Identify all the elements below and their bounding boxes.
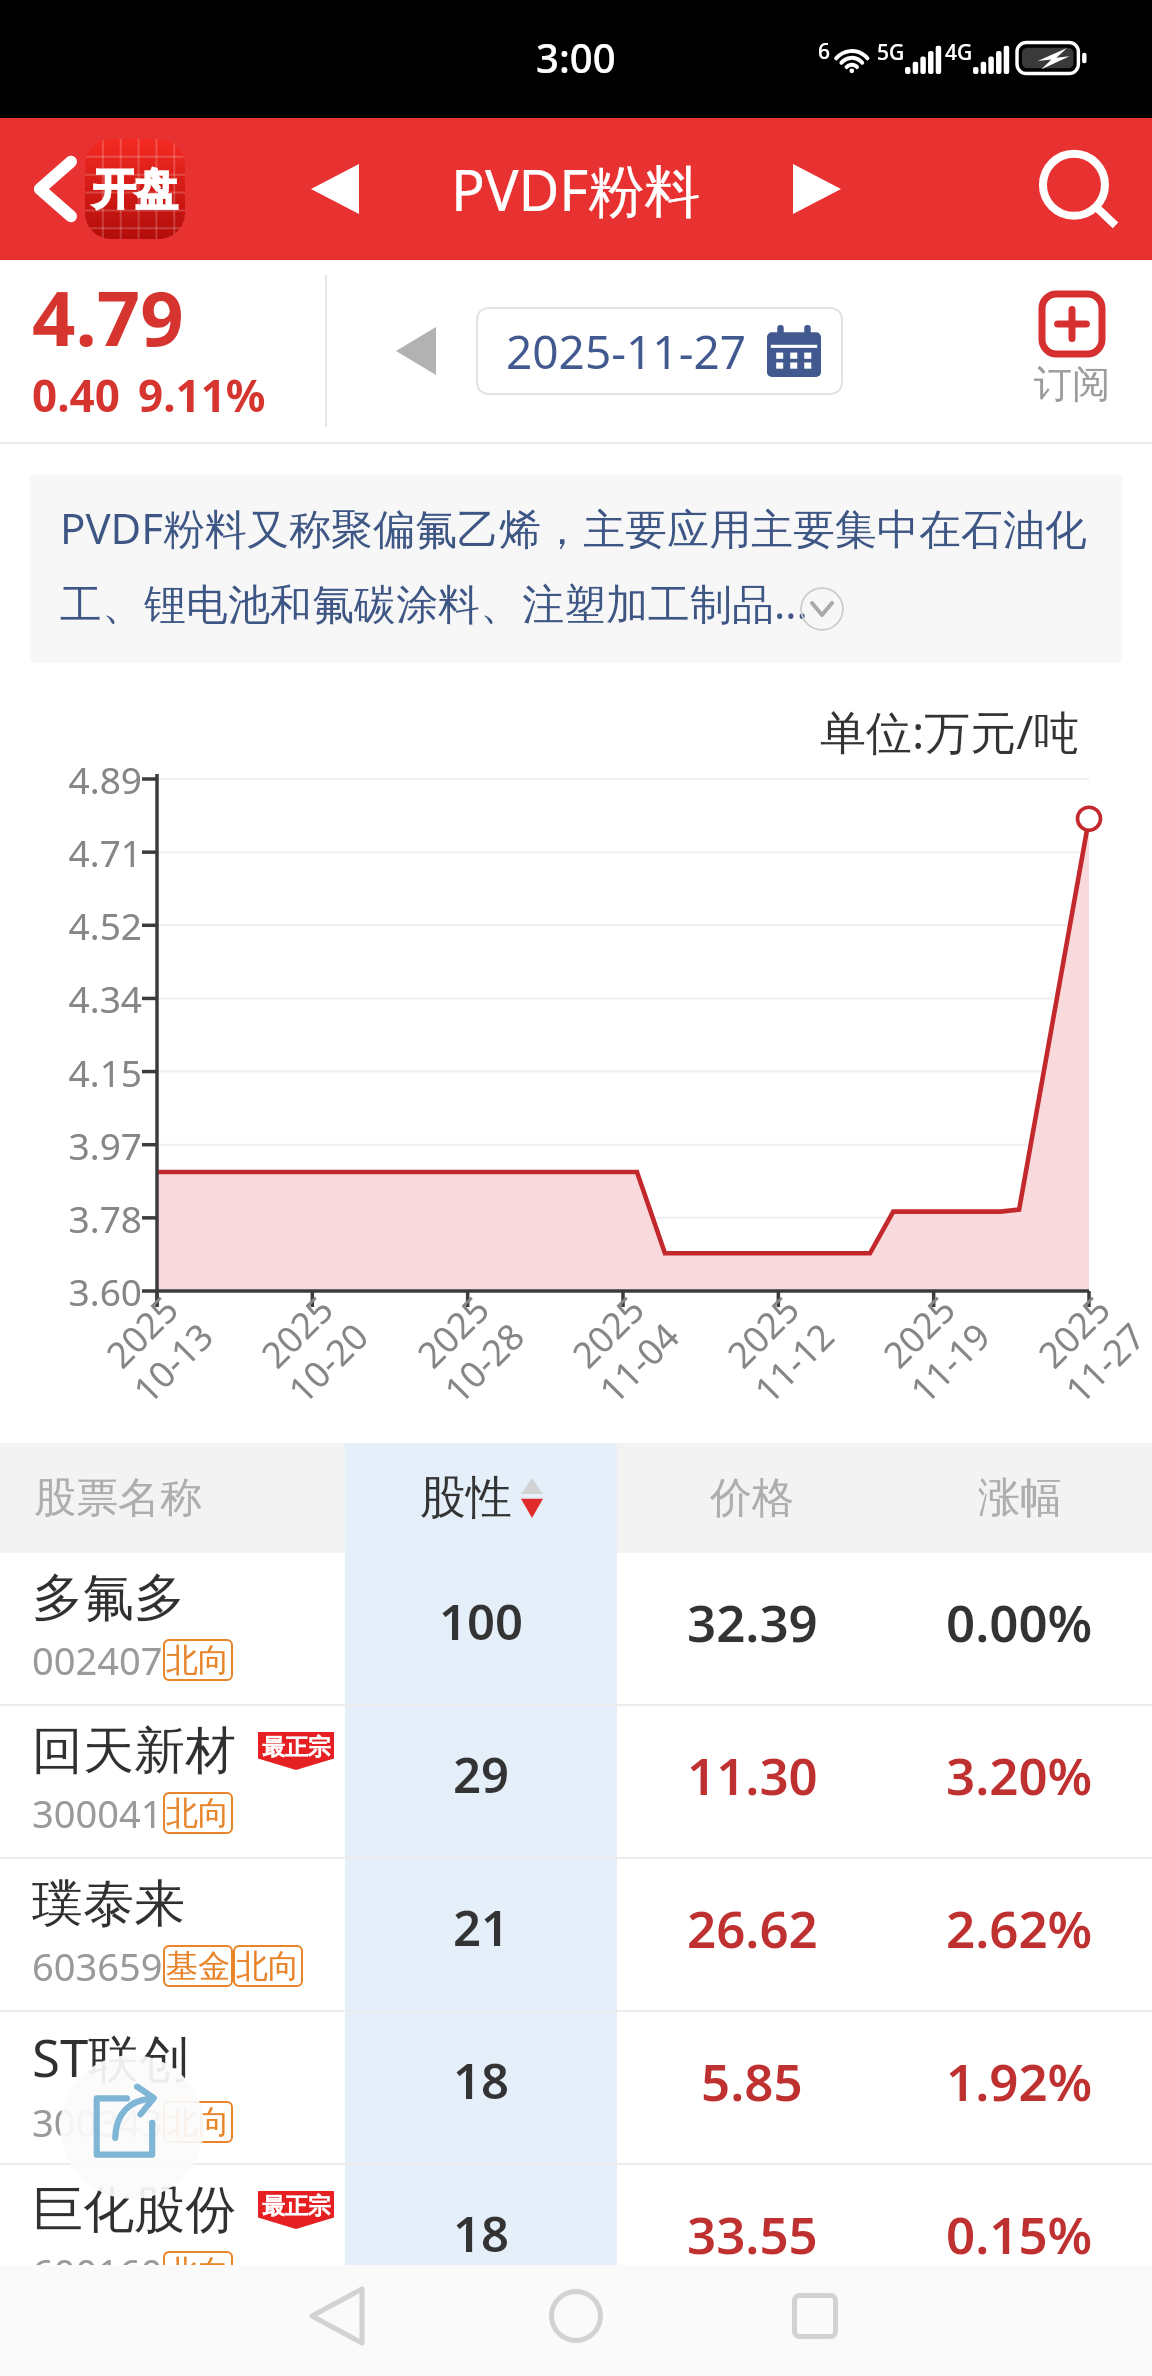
staticText: 3.20% xyxy=(946,1740,1093,1809)
staticText: 4.52 xyxy=(20,900,142,950)
button[interactable]: Subscribe xyxy=(1034,294,1110,408)
staticText: 巨化股份 xyxy=(32,2178,236,2242)
staticText: 订阅 xyxy=(1034,360,1110,408)
button[interactable]: 多氟多 xyxy=(0,1553,1152,1704)
staticText: 26.62 xyxy=(687,1893,818,1962)
staticText: 股票名称 xyxy=(34,1472,202,1525)
staticText: 涨幅 xyxy=(978,1472,1062,1525)
staticText: 100 xyxy=(439,1588,524,1655)
staticText: 6 xyxy=(818,37,831,66)
staticText: 北向 xyxy=(166,1793,230,1833)
staticText: 002407 xyxy=(32,1634,163,1686)
staticText: 2025 10-20 xyxy=(246,1281,378,1413)
staticText: 4.89 xyxy=(20,754,142,804)
staticText: 5G xyxy=(877,38,905,67)
staticText: 璞泰来 xyxy=(32,1872,185,1936)
button[interactable]: Next xyxy=(773,145,861,233)
staticText: 北向 xyxy=(236,1946,300,1986)
staticText: 最正宗 xyxy=(262,1733,331,1762)
staticText: 2025-11-27 xyxy=(506,320,747,383)
staticText: 18 xyxy=(453,2047,510,2114)
staticText: 4G xyxy=(945,38,973,67)
staticText: 开盘 xyxy=(93,163,177,217)
staticText: 4.15 xyxy=(20,1047,142,1097)
staticText: 1.92% xyxy=(946,2046,1093,2115)
button[interactable]: 回天新材 xyxy=(0,1706,1152,1857)
button[interactable]: 巨化股份 xyxy=(0,2165,1152,2316)
staticText: 3.97 xyxy=(20,1120,142,1170)
staticText: PVDF粉料 xyxy=(451,151,701,227)
staticText: 4.71 xyxy=(20,827,142,877)
staticText: 11.30 xyxy=(687,1740,818,1809)
staticText: 603659 xyxy=(32,1940,163,1992)
staticText: 3.78 xyxy=(20,1193,142,1243)
staticText: 29 xyxy=(453,1741,510,1808)
button[interactable]: Back xyxy=(10,144,100,234)
staticText: 21 xyxy=(453,1894,510,1961)
staticText: 4.79 xyxy=(32,265,184,369)
staticText: 33.55 xyxy=(687,2199,818,2268)
button[interactable]: Previous xyxy=(291,145,379,233)
staticText: 18 xyxy=(453,2200,510,2267)
staticText: 300041 xyxy=(32,1787,163,1839)
button[interactable]: Share xyxy=(60,2055,204,2199)
staticText: ST联创 xyxy=(32,2022,191,2092)
staticText: 2025 10-28 xyxy=(402,1281,534,1413)
staticText: 北向 xyxy=(166,2252,230,2292)
staticText: 多氟多 xyxy=(32,1566,185,1630)
staticText: 0.00% xyxy=(946,1587,1093,1656)
button[interactable]: 璞泰来 xyxy=(0,1859,1152,2010)
button[interactable]: 2025-11-27 xyxy=(476,307,843,395)
staticText: 2025 11-19 xyxy=(868,1281,1000,1413)
button[interactable]: ST联创 xyxy=(0,2012,1152,2163)
staticText: 4.34 xyxy=(20,973,142,1023)
staticText: 3.60 xyxy=(20,1266,142,1316)
staticText: PVDF粉料又称聚偏氟乙烯，主要应用主要集中在石油化工、锂电池和氟碳涂料、注塑加… xyxy=(60,499,1100,632)
staticText: 0.15% xyxy=(946,2199,1093,2268)
staticText: 9.11% xyxy=(138,365,266,425)
staticText: 2025 11-12 xyxy=(712,1281,844,1413)
staticText: 2025 10-13 xyxy=(91,1281,223,1413)
button[interactable]: Recents xyxy=(767,2268,863,2364)
button[interactable]: PVDF粉料又称聚偏氟乙烯，主要应用主要集中在石油化工、锂电池和氟碳涂料、注塑加… xyxy=(30,475,1122,663)
staticText: 价格 xyxy=(710,1472,794,1525)
button[interactable]: Expand xyxy=(800,587,844,631)
staticText: 300343 xyxy=(32,2096,163,2148)
staticText: 2025 11-04 xyxy=(557,1281,689,1413)
staticText: 600160 xyxy=(32,2246,163,2298)
button[interactable]: Search xyxy=(1024,134,1134,244)
staticText: 北向 xyxy=(166,1640,230,1680)
button[interactable]: Previous day xyxy=(378,313,454,389)
staticText: 回天新材 xyxy=(32,1719,236,1783)
staticText: 最正宗 xyxy=(262,2192,331,2221)
staticText: 2.62% xyxy=(946,1893,1093,1962)
staticText: 32.39 xyxy=(687,1587,818,1656)
staticText: 单位:万元/吨 xyxy=(820,700,1080,763)
button[interactable]: 开盘 xyxy=(85,139,185,239)
button[interactable]: Home xyxy=(528,2268,624,2364)
staticText: 2025 11-27 xyxy=(1023,1281,1152,1413)
button[interactable]: Back xyxy=(289,2268,385,2364)
staticText: 基金 xyxy=(166,1946,230,1986)
staticText: 0.40 xyxy=(32,365,120,425)
staticText: 股性 xyxy=(420,1469,512,1527)
staticText: 5.85 xyxy=(701,2046,803,2115)
staticText: 北向 xyxy=(166,2102,230,2142)
staticText: 3:00 xyxy=(536,30,616,84)
